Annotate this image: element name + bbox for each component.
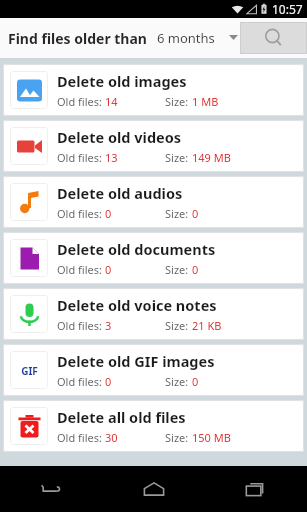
staticText: 0 [105,262,112,277]
staticText: Size: [165,206,192,221]
staticText: Old files: [57,374,105,389]
staticText: Old files: [57,206,105,221]
staticText: Size: [165,94,192,109]
button[interactable]: Delete all old files [3,400,304,452]
staticText: Size: [165,262,192,277]
button[interactable]: Delete old documents [3,232,304,284]
button[interactable]: Search [240,22,307,54]
staticText: Size: [165,150,192,165]
staticText: Delete old videos [57,127,182,147]
staticText: Old files: [57,318,105,333]
staticText: 0 [192,206,199,221]
staticText: Delete old documents [57,239,216,259]
staticText: Find files older than [8,29,147,48]
staticText: 6 months [157,29,215,47]
staticText: 149 MB [192,150,231,165]
staticText: 10:57 [272,1,303,17]
staticText: 14 [105,94,118,109]
staticText: Old files: [57,262,105,277]
staticText: Delete old voice notes [57,295,217,315]
button[interactable]: 6 months [155,25,240,51]
button[interactable]: Delete old images [3,64,304,116]
staticText: Size: [165,430,192,445]
button[interactable]: Delete old videos [3,120,304,172]
staticText: Delete old images [57,71,187,91]
staticText: GIF [21,364,38,378]
staticText: Size: [165,318,192,333]
button[interactable]: GIF [3,344,304,396]
staticText: Delete old audios [57,183,183,203]
staticText: 0 [105,206,112,221]
staticText: Size: [165,374,192,389]
staticText: 30 [105,430,118,445]
button[interactable]: Recents [205,466,307,512]
staticText: Delete all old files [57,407,186,427]
button[interactable]: Delete old voice notes [3,288,304,340]
button[interactable]: Home [103,466,205,512]
staticText: 0 [192,374,199,389]
staticText: 3 [105,318,112,333]
staticText: 13 [105,150,118,165]
staticText: Delete old GIF images [57,351,215,371]
staticText: 1 MB [192,94,219,109]
staticText: 150 MB [192,430,231,445]
staticText: 0 [192,262,199,277]
button[interactable]: Delete old audios [3,176,304,228]
staticText: Old files: [57,150,105,165]
staticText: 0 [105,374,112,389]
staticText: 21 KB [192,318,222,333]
staticText: Old files: [57,94,105,109]
staticText: Old files: [57,430,105,445]
button[interactable]: Back [0,466,103,512]
